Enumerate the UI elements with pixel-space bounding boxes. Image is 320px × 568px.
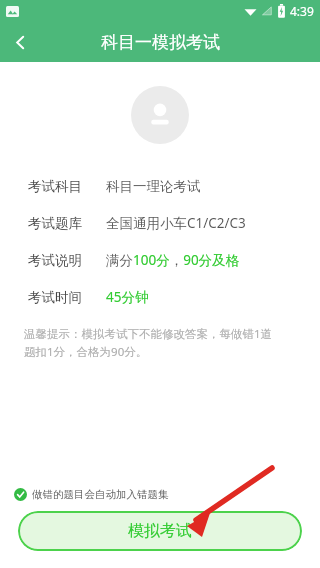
staticText: 模拟考试 <box>128 521 192 541</box>
staticText: 科目一模拟考试 <box>101 32 220 53</box>
staticText: 全国通用小车C1/C2/C3 <box>106 214 246 232</box>
staticText: 45分钟 <box>106 288 149 306</box>
staticText: 满分100分，90分及格 <box>106 251 240 269</box>
staticText: 考试说明 <box>28 252 82 269</box>
staticText: 4:39 <box>290 3 314 19</box>
staticText: 考试科目 <box>28 178 82 195</box>
button[interactable]: 模拟考试 <box>18 511 302 551</box>
staticText: 做错的题目会自动加入错题集 <box>32 488 169 501</box>
staticText: 考试题库 <box>28 215 82 232</box>
staticText: 科目一理论考试 <box>106 178 201 195</box>
staticText: 温馨提示：模拟考试下不能修改答案，每做错1道 题扣1分，合格为90分。 <box>24 326 273 360</box>
staticText: 考试时间 <box>28 289 82 306</box>
button[interactable]: Back <box>0 22 40 62</box>
button[interactable]: 做错的题目会自动加入错题集 <box>14 488 169 501</box>
